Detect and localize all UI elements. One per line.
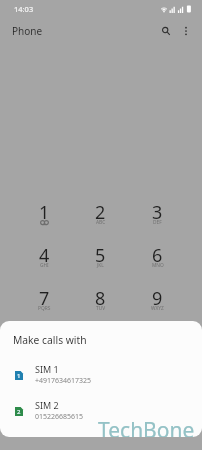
staticText: SIM 1 — [35, 363, 59, 375]
staticText: JKL — [97, 262, 104, 269]
button[interactable]: 2 — [72, 197, 129, 240]
button[interactable]: 2 — [0, 396, 202, 424]
staticText: PQRS — [38, 305, 51, 312]
staticText: 5 — [95, 243, 106, 268]
button[interactable]: More options — [175, 20, 197, 42]
staticText: +4917634617325 — [35, 376, 92, 386]
button[interactable]: 3 — [129, 197, 186, 240]
button[interactable]: Search — [156, 20, 176, 42]
staticText: 9 — [152, 286, 163, 311]
staticText: ABC — [96, 219, 106, 226]
staticText: DEF — [153, 219, 162, 226]
staticText: 4 — [39, 243, 50, 268]
staticText: 7 — [39, 286, 50, 311]
staticText: 2 — [17, 408, 21, 416]
staticText: 1 — [39, 200, 50, 225]
staticText: 6 — [152, 243, 163, 268]
button[interactable]: 1 — [16, 197, 72, 240]
staticText: TechBone — [98, 416, 195, 437]
staticText: GHI — [40, 262, 49, 269]
staticText: MNO — [152, 262, 164, 269]
staticText: 3 — [152, 200, 163, 225]
button[interactable]: 7 — [16, 283, 72, 326]
staticText: TUV — [96, 305, 106, 312]
button[interactable]: 6 — [129, 240, 186, 283]
button[interactable]: 1 — [0, 360, 202, 388]
button[interactable]: 9 — [129, 283, 186, 326]
staticText: 2 — [95, 200, 106, 225]
staticText: 015226685615 — [35, 412, 84, 422]
button[interactable]: 8 — [72, 283, 129, 326]
staticText: WXYZ — [151, 305, 164, 312]
staticText: 1 — [17, 372, 21, 380]
staticText: SIM 2 — [35, 399, 59, 411]
staticText: Phone — [12, 24, 43, 38]
staticText: 14:03 — [14, 4, 34, 14]
button[interactable]: 4 — [16, 240, 72, 283]
staticText: 8 — [95, 286, 106, 311]
staticText: Make calls with — [13, 333, 87, 347]
button[interactable]: 5 — [72, 240, 129, 283]
